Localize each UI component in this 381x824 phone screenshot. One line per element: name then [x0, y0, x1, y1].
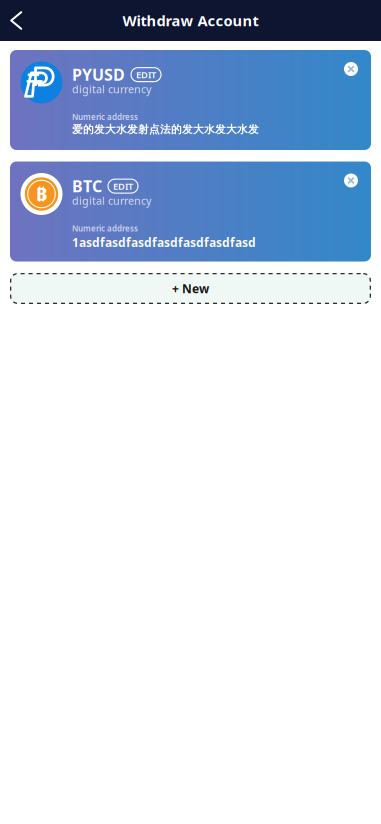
- staticText: 1asdfasdfasdfasdfasdfasdfasd: [72, 234, 256, 250]
- staticText: PYUSD: [72, 64, 125, 85]
- staticText: Withdraw Account: [122, 11, 258, 30]
- staticText: Numeric address: [72, 223, 138, 234]
- staticText: 爱的发大水发射点法的发大水发大水发: [72, 123, 259, 136]
- button[interactable]: + New: [10, 273, 371, 304]
- staticText: digital currency: [72, 193, 151, 208]
- staticText: Numeric address: [72, 111, 138, 122]
- staticText: BTC: [72, 175, 102, 197]
- button[interactable]: Remove PYUSD: [333, 50, 371, 87]
- staticText: EDIT: [113, 180, 133, 192]
- button[interactable]: Back: [0, 1, 34, 40]
- button[interactable]: Remove BTC: [333, 161, 371, 198]
- staticText: B: [36, 182, 48, 205]
- staticText: + New: [172, 280, 209, 296]
- staticText: EDIT: [136, 68, 156, 81]
- staticText: digital currency: [72, 82, 151, 96]
